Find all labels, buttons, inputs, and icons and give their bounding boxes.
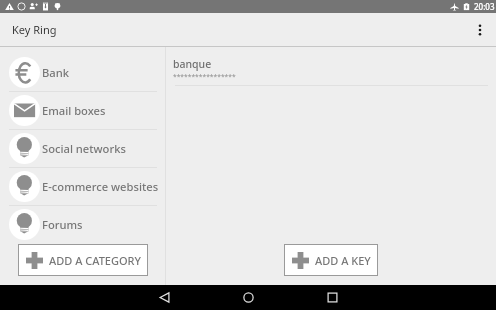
- staticText: banque: [173, 57, 212, 71]
- button[interactable]: banque: [166, 47, 496, 85]
- staticText: Email boxes: [42, 103, 106, 118]
- button[interactable]: Bank: [0, 54, 165, 91]
- button[interactable]: Forums: [0, 206, 165, 243]
- button[interactable]: Recent apps: [310, 285, 354, 310]
- button[interactable]: More options: [465, 15, 495, 45]
- staticText: ADD A CATEGORY: [49, 253, 141, 268]
- button[interactable]: E-commerce websites: [0, 168, 165, 205]
- staticText: 20:03: [474, 1, 495, 12]
- staticText: Key Ring: [12, 22, 57, 37]
- button[interactable]: ADD A KEY: [284, 244, 378, 276]
- staticText: Bank: [42, 65, 69, 80]
- button[interactable]: Email boxes: [0, 92, 165, 129]
- staticText: *****************: [173, 72, 236, 81]
- button[interactable]: Back: [142, 285, 186, 310]
- staticText: E-commerce websites: [42, 179, 159, 194]
- staticText: Forums: [42, 217, 83, 232]
- button[interactable]: Social networks: [0, 130, 165, 167]
- button[interactable]: Home: [226, 285, 270, 310]
- staticText: ADD A KEY: [315, 253, 371, 268]
- button[interactable]: ADD A CATEGORY: [18, 244, 148, 276]
- staticText: Social networks: [42, 141, 126, 156]
